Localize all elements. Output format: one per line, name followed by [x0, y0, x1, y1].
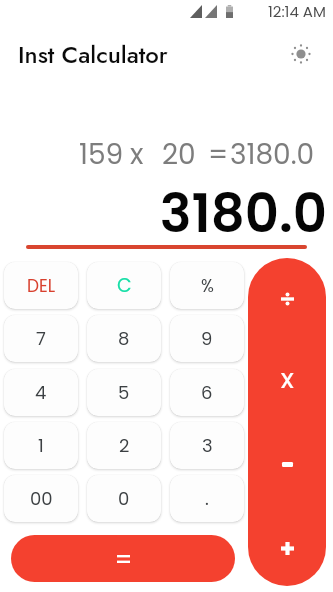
button[interactable]: 00: [4, 475, 78, 522]
button[interactable]: Multiply: [248, 339, 326, 421]
staticText: .: [205, 486, 209, 511]
button[interactable]: Minus: [248, 422, 326, 506]
staticText: 1: [38, 433, 44, 458]
button[interactable]: 2: [87, 422, 161, 469]
button[interactable]: 3: [170, 422, 244, 469]
button[interactable]: 4: [4, 369, 78, 416]
staticText: 3: [202, 433, 213, 458]
button[interactable]: Divide: [248, 258, 326, 340]
button[interactable]: 9: [170, 315, 244, 362]
button[interactable]: C: [87, 262, 161, 309]
button[interactable]: 8: [87, 315, 161, 362]
staticText: 4: [35, 380, 47, 405]
staticText: 5: [118, 380, 130, 405]
button[interactable]: 6: [170, 369, 244, 416]
staticText: 2: [119, 433, 130, 458]
button[interactable]: 0: [87, 475, 161, 522]
staticText: 20: [162, 135, 196, 174]
button[interactable]: 7: [4, 315, 78, 362]
button[interactable]: 5: [87, 369, 161, 416]
button[interactable]: DEL: [4, 262, 78, 309]
button[interactable]: .: [170, 475, 244, 522]
staticText: 12:14 AM: [268, 1, 326, 22]
staticText: =: [208, 135, 229, 174]
staticText: 3180.0: [230, 135, 315, 174]
staticText: 6: [201, 380, 213, 405]
staticText: 00: [30, 486, 53, 511]
staticText: 3180.0: [0, 176, 327, 250]
staticText: x: [130, 135, 144, 174]
staticText: 7: [36, 326, 46, 351]
button[interactable]: %: [170, 262, 244, 309]
button[interactable]: Equals: [11, 535, 235, 582]
staticText: %: [201, 274, 214, 298]
staticText: DEL: [27, 274, 56, 298]
staticText: C: [117, 272, 132, 299]
button[interactable]: Plus: [248, 508, 326, 586]
button[interactable]: Toggle theme: [284, 37, 318, 71]
staticText: 0: [118, 486, 130, 511]
staticText: 159: [79, 135, 124, 174]
staticText: X: [280, 365, 295, 396]
staticText: 9: [201, 326, 213, 351]
staticText: Inst Calculator: [18, 37, 168, 72]
button[interactable]: 1: [4, 422, 78, 469]
staticText: 8: [118, 326, 130, 351]
